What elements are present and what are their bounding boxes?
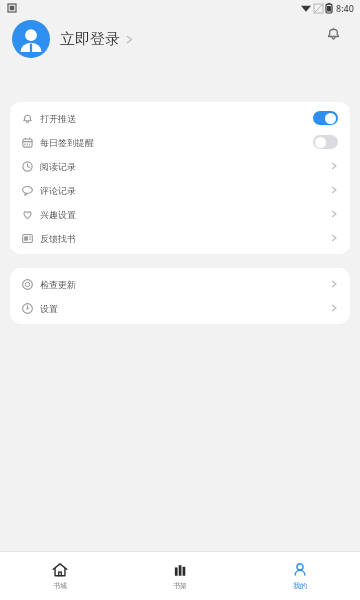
button[interactable]: Notifications (320, 20, 346, 46)
button[interactable]: 评论记录 (10, 178, 350, 202)
staticText: 书城 (53, 581, 67, 590)
button[interactable]: 设置 (10, 296, 350, 320)
button[interactable]: 反馈找书 (10, 226, 350, 250)
button[interactable]: 阅读记录 (10, 154, 350, 178)
button[interactable]: 每日签到提醒 (10, 130, 350, 154)
button[interactable]: 检查更新 (10, 272, 350, 296)
staticText: 检查更新 (40, 279, 76, 290)
staticText: 阅读记录 (40, 161, 76, 172)
staticText: 兴趣设置 (40, 209, 76, 220)
button[interactable]: Toggle on (313, 111, 338, 125)
button[interactable]: Toggle off (313, 135, 338, 149)
button[interactable]: 我的 (240, 552, 360, 600)
button[interactable]: 立即登录 (12, 20, 134, 58)
button[interactable]: 打开推送 (10, 106, 350, 130)
staticText: 我的 (293, 581, 307, 590)
staticText: 书架 (173, 581, 187, 590)
button[interactable]: 兴趣设置 (10, 202, 350, 226)
staticText: 打开推送 (40, 113, 76, 124)
staticText: 8:40 (336, 2, 354, 14)
staticText: 设置 (40, 303, 58, 314)
staticText: 评论记录 (40, 185, 76, 196)
staticText: 每日签到提醒 (40, 137, 94, 148)
button[interactable]: 书城 (0, 552, 120, 600)
button[interactable]: 书架 (120, 552, 240, 600)
staticText: 立即登录 (60, 30, 120, 49)
staticText: 反馈找书 (40, 233, 76, 244)
